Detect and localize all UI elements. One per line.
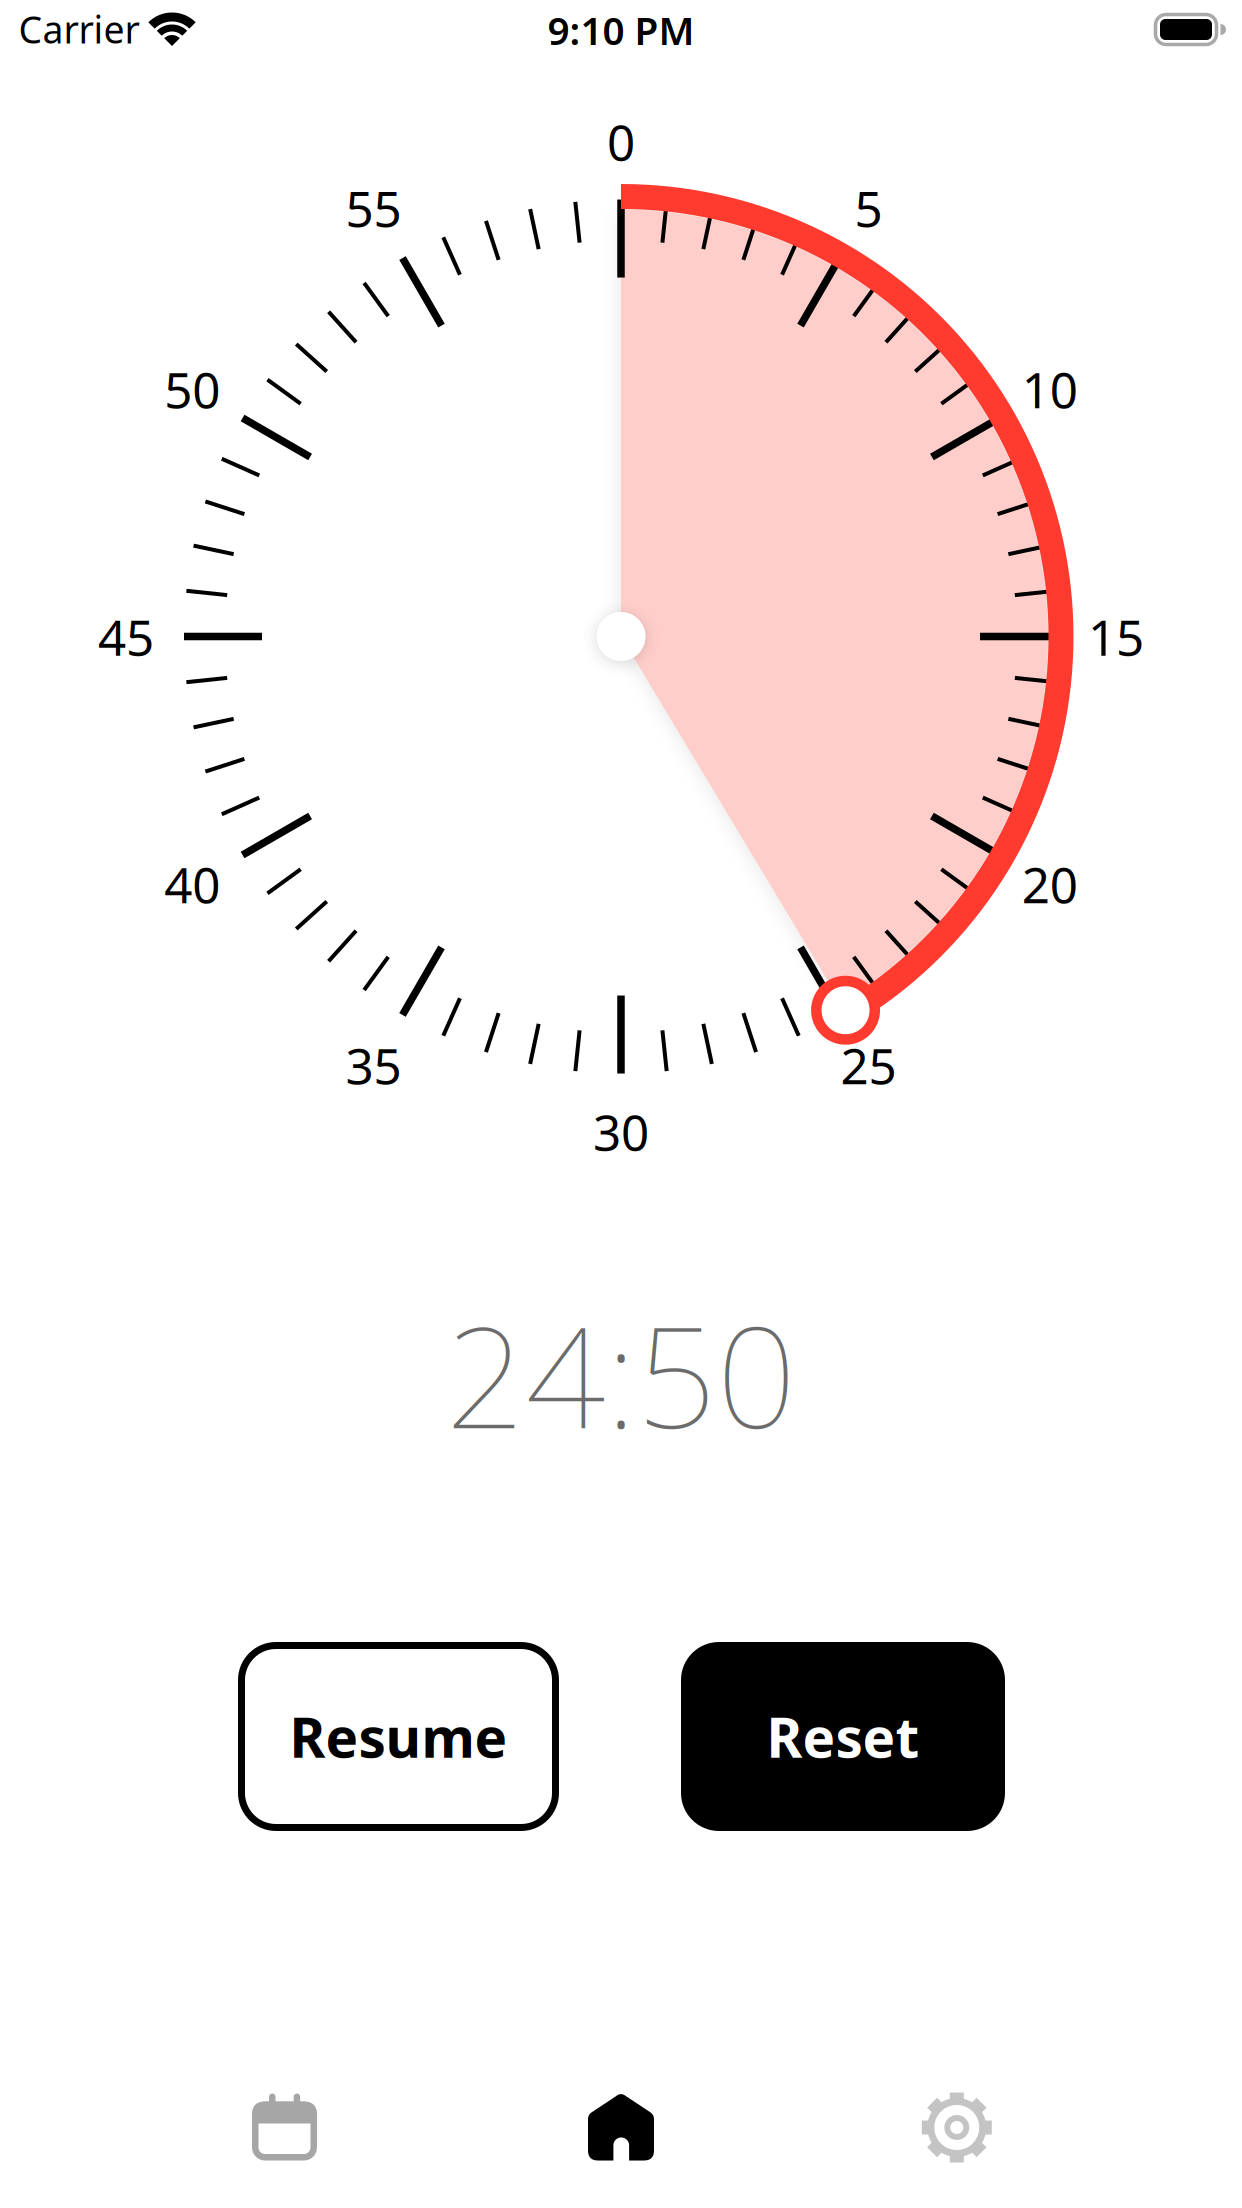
staticText: 24:50 bbox=[445, 1281, 796, 1467]
staticText: 40 bbox=[164, 851, 220, 917]
staticText: 9:10 PM bbox=[547, 4, 694, 56]
staticText: 50 bbox=[164, 356, 220, 422]
button[interactable]: Schedule bbox=[251, 2093, 317, 2160]
staticText: Reset bbox=[766, 1700, 919, 1773]
staticText: 15 bbox=[1088, 604, 1144, 669]
staticText: 30 bbox=[593, 1099, 649, 1164]
staticText: 10 bbox=[1022, 356, 1078, 422]
button[interactable]: Resume bbox=[241, 1645, 555, 1827]
staticText: 55 bbox=[345, 175, 401, 241]
staticText: Carrier bbox=[18, 4, 139, 54]
button[interactable]: Reset bbox=[681, 1642, 1005, 1831]
button[interactable]: Home bbox=[588, 2093, 654, 2161]
staticText: 35 bbox=[345, 1032, 401, 1098]
staticText: 0 bbox=[607, 109, 635, 174]
staticText: 45 bbox=[98, 604, 154, 669]
staticText: 25 bbox=[840, 1032, 896, 1098]
staticText: 20 bbox=[1022, 851, 1078, 917]
button[interactable]: Settings bbox=[920, 2091, 993, 2164]
staticText: 5 bbox=[854, 175, 882, 241]
staticText: Resume bbox=[289, 1700, 507, 1773]
